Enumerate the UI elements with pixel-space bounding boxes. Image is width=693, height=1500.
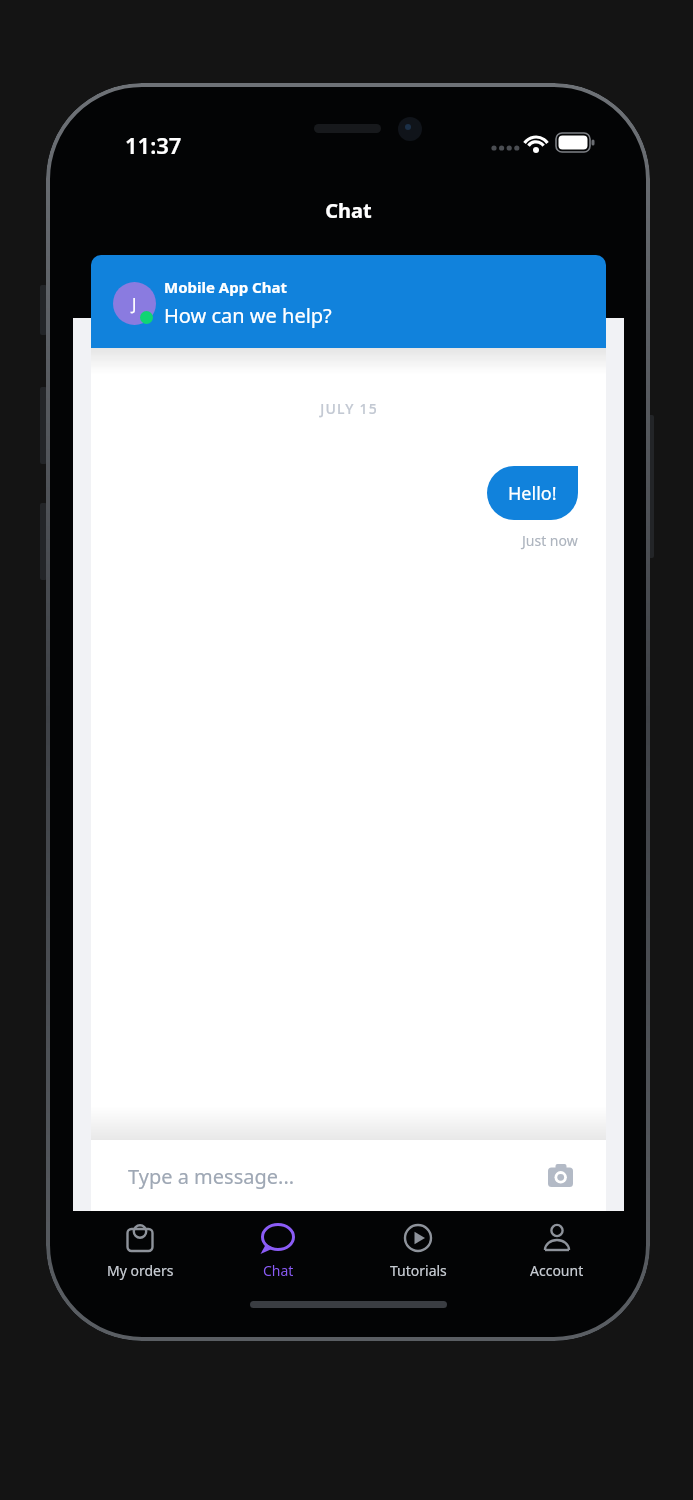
button[interactable]: Tutorials bbox=[348, 1221, 488, 1283]
staticText: How can we help? bbox=[164, 302, 332, 329]
staticText: Chat bbox=[263, 1261, 294, 1280]
staticText: Type a message... bbox=[128, 1163, 295, 1190]
button[interactable]: Chat bbox=[208, 1221, 348, 1283]
staticText: Mobile App Chat bbox=[164, 277, 287, 297]
staticText: My orders bbox=[107, 1261, 174, 1280]
button[interactable] bbox=[91, 1140, 606, 1211]
staticText: JULY 15 bbox=[320, 399, 378, 418]
button[interactable] bbox=[546, 1160, 576, 1190]
staticText: Just now bbox=[522, 531, 578, 550]
staticText: Tutorials bbox=[390, 1261, 447, 1280]
button[interactable]: Hello! bbox=[487, 466, 578, 520]
button[interactable]: Account bbox=[487, 1221, 627, 1283]
staticText: Hello! bbox=[508, 481, 557, 506]
staticText: Chat bbox=[325, 197, 372, 224]
staticText: 11:37 bbox=[125, 130, 182, 160]
button[interactable]: My orders bbox=[70, 1221, 210, 1283]
staticText: J bbox=[132, 293, 137, 315]
staticText: Account bbox=[530, 1261, 584, 1280]
button[interactable]: J bbox=[91, 255, 606, 348]
